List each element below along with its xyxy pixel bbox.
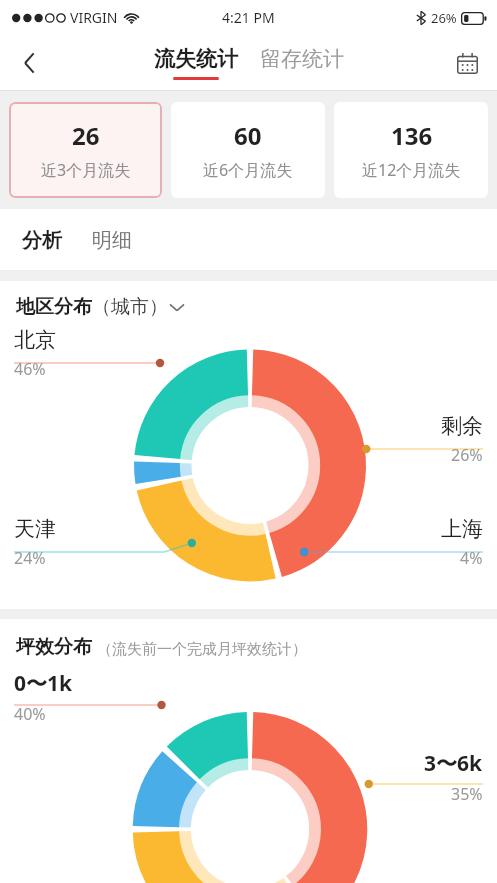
button[interactable]: 分析: [16, 222, 68, 259]
staticText: 3〜6k: [424, 749, 483, 778]
staticText: 26%: [451, 444, 483, 466]
staticText: 46%: [14, 358, 46, 380]
staticText: 剩余: [441, 413, 483, 439]
button[interactable]: 留存统计: [256, 46, 348, 72]
staticText: 流失统计: [154, 46, 238, 72]
staticText: 坪效分布: [16, 635, 92, 659]
button[interactable]: 明细: [86, 222, 138, 259]
staticText: 40%: [14, 703, 46, 725]
staticText: 4:21 PM: [222, 8, 275, 27]
staticText: 明细: [92, 228, 132, 253]
button[interactable]: 地区分布: [16, 295, 184, 319]
staticText: 上海: [441, 516, 483, 542]
button[interactable]: 136: [334, 102, 488, 198]
staticText: 留存统计: [260, 46, 344, 72]
staticText: 4%: [460, 547, 483, 569]
staticText: 136: [391, 119, 433, 152]
staticText: 24%: [14, 547, 46, 569]
button[interactable]: 流失统计: [150, 46, 242, 80]
staticText: 近6个月流失: [203, 159, 293, 181]
staticText: 天津: [14, 516, 56, 542]
staticText: （城市）: [92, 295, 168, 319]
staticText: VIRGIN: [70, 8, 118, 27]
staticText: 0〜1k: [14, 669, 73, 698]
staticText: 北京: [14, 327, 56, 353]
staticText: （流失前一个完成月坪效统计）: [97, 640, 307, 659]
button[interactable]: 26: [9, 102, 162, 198]
staticText: 60: [234, 119, 262, 152]
staticText: 35%: [451, 783, 483, 805]
button[interactable]: Calendar: [445, 41, 489, 85]
staticText: 26: [72, 119, 100, 152]
staticText: 26%: [431, 9, 457, 27]
staticText: 分析: [22, 228, 62, 253]
staticText: 近3个月流失: [41, 159, 131, 181]
staticText: 近12个月流失: [362, 159, 461, 181]
staticText: 地区分布: [16, 295, 92, 319]
button[interactable]: 60: [171, 102, 325, 198]
button[interactable]: Back: [6, 40, 52, 86]
